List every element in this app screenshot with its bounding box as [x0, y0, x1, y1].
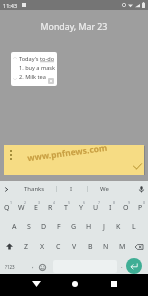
button[interactable]: 3: [28, 197, 43, 216]
staticText: ,: [32, 262, 34, 270]
staticText: N: [103, 242, 109, 252]
button[interactable]: Thanks: [12, 181, 56, 197]
button[interactable]: J: [96, 216, 111, 235]
button[interactable]: .: [117, 257, 126, 277]
staticText: X: [40, 242, 45, 252]
button[interactable]: N: [98, 237, 114, 256]
staticText: We: [100, 185, 109, 193]
button[interactable]: L: [126, 216, 141, 235]
button[interactable]: 6: [73, 197, 88, 216]
button[interactable]: D: [36, 216, 51, 235]
staticText: Z: [24, 242, 29, 252]
staticText: Y: [79, 203, 83, 213]
button[interactable]: Z: [18, 237, 34, 256]
button[interactable]: V: [66, 237, 82, 256]
button[interactable]: 7: [88, 197, 103, 216]
button[interactable]: C: [50, 237, 66, 256]
staticText: 9: [128, 200, 131, 205]
staticText: 6: [83, 200, 86, 205]
staticText: www.pnfnews.com: [27, 142, 108, 164]
staticText: R: [48, 203, 53, 213]
button[interactable]: Emoji: [37, 257, 48, 277]
button[interactable]: Expand suggestions: [0, 181, 12, 197]
staticText: Monday, Mar 23: [0, 21, 148, 33]
button[interactable]: 9: [118, 197, 133, 216]
staticText: 2: [24, 200, 27, 205]
staticText: ?123: [5, 264, 15, 270]
staticText: B: [88, 242, 93, 252]
button[interactable]: H: [81, 216, 96, 235]
staticText: 3: [38, 200, 41, 205]
button[interactable]: Today's: [11, 52, 57, 86]
staticText: K: [116, 222, 121, 232]
staticText: H: [86, 222, 92, 232]
button[interactable]: ,: [27, 257, 38, 277]
button[interactable]: Send: [126, 258, 142, 274]
staticText: V: [72, 242, 77, 252]
staticText: C: [56, 242, 61, 252]
button[interactable]: Back: [27, 274, 46, 293]
button[interactable]: Backspace: [130, 237, 148, 256]
button[interactable]: We: [87, 181, 121, 197]
button[interactable]: X: [34, 237, 50, 256]
staticText: to-do: [40, 55, 55, 63]
button[interactable]: 1: [0, 197, 14, 216]
button[interactable]: B: [82, 237, 98, 256]
staticText: T: [64, 203, 68, 213]
staticText: A: [12, 222, 17, 232]
other: Done: [133, 163, 142, 170]
button[interactable]: F: [51, 216, 66, 235]
staticText: M: [119, 242, 126, 252]
button[interactable]: Voice input: [134, 181, 148, 197]
button[interactable]: K: [111, 216, 126, 235]
staticText: .: [121, 262, 123, 270]
staticText: 11:43: [3, 2, 18, 9]
button[interactable]: G: [66, 216, 81, 235]
button[interactable]: 8: [103, 197, 118, 216]
staticText: Thanks: [24, 185, 45, 193]
other: More options: [10, 150, 12, 160]
staticText: L: [132, 222, 136, 232]
button[interactable]: Home: [65, 274, 84, 293]
staticText: Today's: [19, 55, 40, 63]
staticText: 1. buy a mask: [19, 64, 55, 72]
button[interactable]: 5: [58, 197, 73, 216]
button[interactable]: S: [21, 216, 36, 235]
staticText: 7: [98, 200, 101, 205]
button[interactable]: I: [56, 181, 87, 197]
staticText: G: [71, 222, 77, 232]
staticText: W: [18, 203, 25, 213]
staticText: F: [57, 222, 61, 232]
button[interactable]: 4: [43, 197, 58, 216]
staticText: D: [41, 222, 47, 232]
button[interactable]: 2: [14, 197, 28, 216]
staticText: U: [93, 203, 99, 213]
staticText: S: [27, 222, 31, 232]
staticText: J: [103, 222, 105, 232]
staticText: E: [34, 203, 38, 213]
button[interactable]: 0: [133, 197, 148, 216]
button[interactable]: ?123: [1, 257, 19, 277]
staticText: 8: [113, 200, 116, 205]
staticText: 1: [10, 200, 13, 205]
staticText: 4: [53, 200, 56, 205]
staticText: I: [109, 203, 112, 213]
button[interactable]: Shift: [0, 237, 18, 256]
staticText: P: [138, 203, 143, 213]
staticText: O: [123, 203, 129, 213]
staticText: Q: [4, 203, 10, 213]
staticText: 5: [68, 200, 71, 205]
button[interactable]: M: [114, 237, 130, 256]
button[interactable]: Recents: [104, 274, 123, 293]
staticText: I: [70, 185, 73, 193]
button[interactable]: A: [7, 216, 21, 235]
staticText: 0: [143, 200, 146, 205]
staticText: 2. Milk tea: [19, 73, 46, 81]
button[interactable]: More options: [4, 145, 144, 175]
